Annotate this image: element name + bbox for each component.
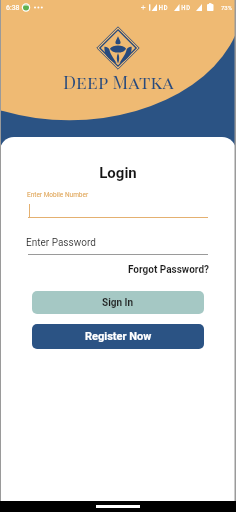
staticText: Sign In — [102, 297, 134, 309]
staticText: Enter Mobile Number — [27, 191, 89, 199]
staticText: 6:38 — [6, 4, 20, 12]
staticText: Register Now — [85, 330, 152, 343]
button[interactable]: Register Now — [32, 324, 204, 349]
button[interactable]: Sign In — [32, 291, 204, 314]
button[interactable]: Forgot Password? — [0, 264, 209, 276]
staticText: 73% — [221, 4, 233, 11]
staticText: Deep Matka — [63, 70, 174, 94]
staticText: Enter Password — [26, 237, 96, 249]
staticText: Login — [0, 164, 236, 182]
